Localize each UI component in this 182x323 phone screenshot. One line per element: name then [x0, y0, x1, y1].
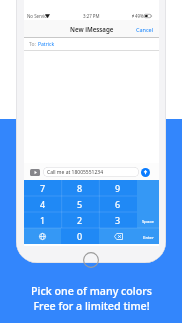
- staticText: Pick one of many colors: [31, 284, 152, 299]
- button[interactable]: Apps: [30, 169, 40, 176]
- staticText: 8: [77, 182, 83, 194]
- button[interactable]: 0: [61, 228, 99, 244]
- staticText: To:: [29, 41, 38, 48]
- staticText: 3: [115, 214, 121, 226]
- button[interactable]: Cancel: [131, 20, 159, 38]
- button[interactable]: 3: [99, 212, 137, 228]
- button[interactable]: Call me at 18005551234: [43, 167, 139, 177]
- staticText: 49%: [135, 13, 144, 19]
- button[interactable]: To:: [29, 41, 55, 48]
- button[interactable]: 7: [24, 180, 61, 196]
- staticText: 6: [115, 198, 121, 210]
- button[interactable]: 2: [61, 212, 99, 228]
- button[interactable]: Space: [137, 180, 159, 228]
- staticText: Patrick: [38, 41, 55, 48]
- button[interactable]: 5: [61, 196, 99, 212]
- staticText: 0: [77, 230, 83, 242]
- staticText: No Service: [27, 13, 49, 19]
- button[interactable]: 1: [24, 212, 61, 228]
- staticText: Free for a limited time!: [33, 299, 150, 314]
- staticText: 5: [77, 198, 83, 210]
- button[interactable]: 8: [61, 180, 99, 196]
- staticText: New iMessage: [70, 25, 114, 33]
- button[interactable]: Send: [141, 168, 150, 177]
- button[interactable]: Delete: [99, 228, 137, 244]
- staticText: Enter: [143, 234, 154, 240]
- other: Home: [83, 252, 99, 268]
- staticText: 9: [115, 182, 121, 194]
- button[interactable]: Enter: [137, 228, 159, 244]
- staticText: 2: [77, 214, 83, 226]
- staticText: Space: [142, 218, 154, 224]
- button[interactable]: Change keyboard: [24, 228, 61, 244]
- button[interactable]: 9: [99, 180, 137, 196]
- staticText: Cancel: [136, 26, 154, 33]
- button[interactable]: 4: [24, 196, 61, 212]
- staticText: 3:27 PM: [83, 13, 100, 19]
- button[interactable]: 6: [99, 196, 137, 212]
- staticText: 7: [40, 182, 46, 194]
- staticText: 4: [40, 198, 46, 210]
- staticText: Call me at 18005551234: [47, 169, 104, 176]
- staticText: 1: [40, 214, 46, 226]
